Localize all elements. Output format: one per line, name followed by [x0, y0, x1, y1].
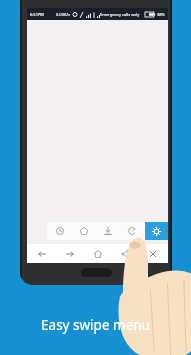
button[interactable]: Settings — [145, 222, 168, 240]
button[interactable]: Downloads — [97, 222, 119, 240]
staticText: Emergency calls only — [100, 12, 140, 17]
staticText: Easy swipe menu — [0, 316, 191, 334]
button[interactable]: Share — [112, 244, 138, 263]
button[interactable]: Close — [140, 244, 166, 263]
button[interactable]: Bookmarks — [73, 222, 95, 240]
staticText: 0.00K/s — [56, 12, 70, 17]
button[interactable]: History — [49, 222, 71, 240]
button[interactable]: Home — [85, 244, 111, 263]
button[interactable]: Night mode — [121, 222, 143, 240]
staticText: 38% — [157, 12, 165, 17]
button[interactable]: Back — [29, 244, 55, 263]
button[interactable]: Forward — [57, 244, 83, 263]
staticText: 6:51PM — [30, 12, 44, 17]
